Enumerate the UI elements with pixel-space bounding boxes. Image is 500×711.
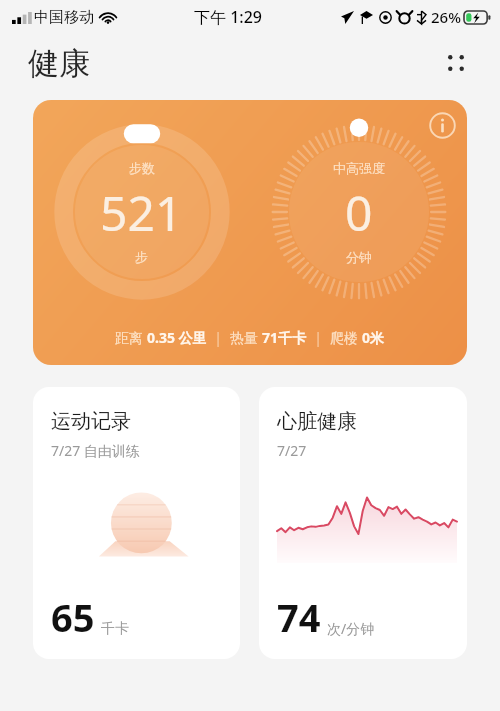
staticText: 次/分钟 — [327, 619, 375, 638]
staticText: 健康 — [28, 44, 90, 83]
staticText: 0米 — [362, 328, 385, 347]
staticText: 步 — [135, 249, 148, 265]
button[interactable]: 心脏健康 — [259, 387, 467, 659]
staticText: 71千卡 — [262, 328, 307, 347]
staticText: 521 — [100, 180, 183, 245]
staticText: 26% — [431, 7, 461, 27]
staticText: | — [307, 328, 330, 347]
staticText: 74 — [277, 591, 321, 643]
button[interactable]: Info — [425, 108, 459, 142]
staticText: 7/27 — [277, 441, 307, 460]
staticText: 步数 — [129, 160, 155, 176]
staticText: 距离 — [115, 328, 147, 347]
button[interactable]: 运动记录 — [33, 387, 240, 659]
staticText: 7/27 自由训练 — [51, 441, 140, 460]
staticText: 中高强度 — [333, 160, 385, 176]
staticText: 心脏健康 — [277, 409, 357, 434]
staticText: 热量 — [230, 328, 262, 347]
staticText: 65 — [51, 591, 95, 643]
staticText: 运动记录 — [51, 409, 131, 434]
staticText: 爬楼 — [330, 328, 362, 347]
staticText: 0 — [345, 180, 373, 245]
staticText: | — [207, 328, 230, 347]
staticText: 千卡 — [101, 620, 129, 638]
staticText: 0.35 公里 — [147, 328, 207, 347]
staticText: 中国移动 — [34, 8, 94, 27]
button[interactable]: More options — [434, 41, 478, 85]
staticText: 分钟 — [346, 249, 372, 265]
button[interactable]: Info — [33, 100, 467, 365]
staticText: 下午 1:29 — [194, 6, 262, 28]
